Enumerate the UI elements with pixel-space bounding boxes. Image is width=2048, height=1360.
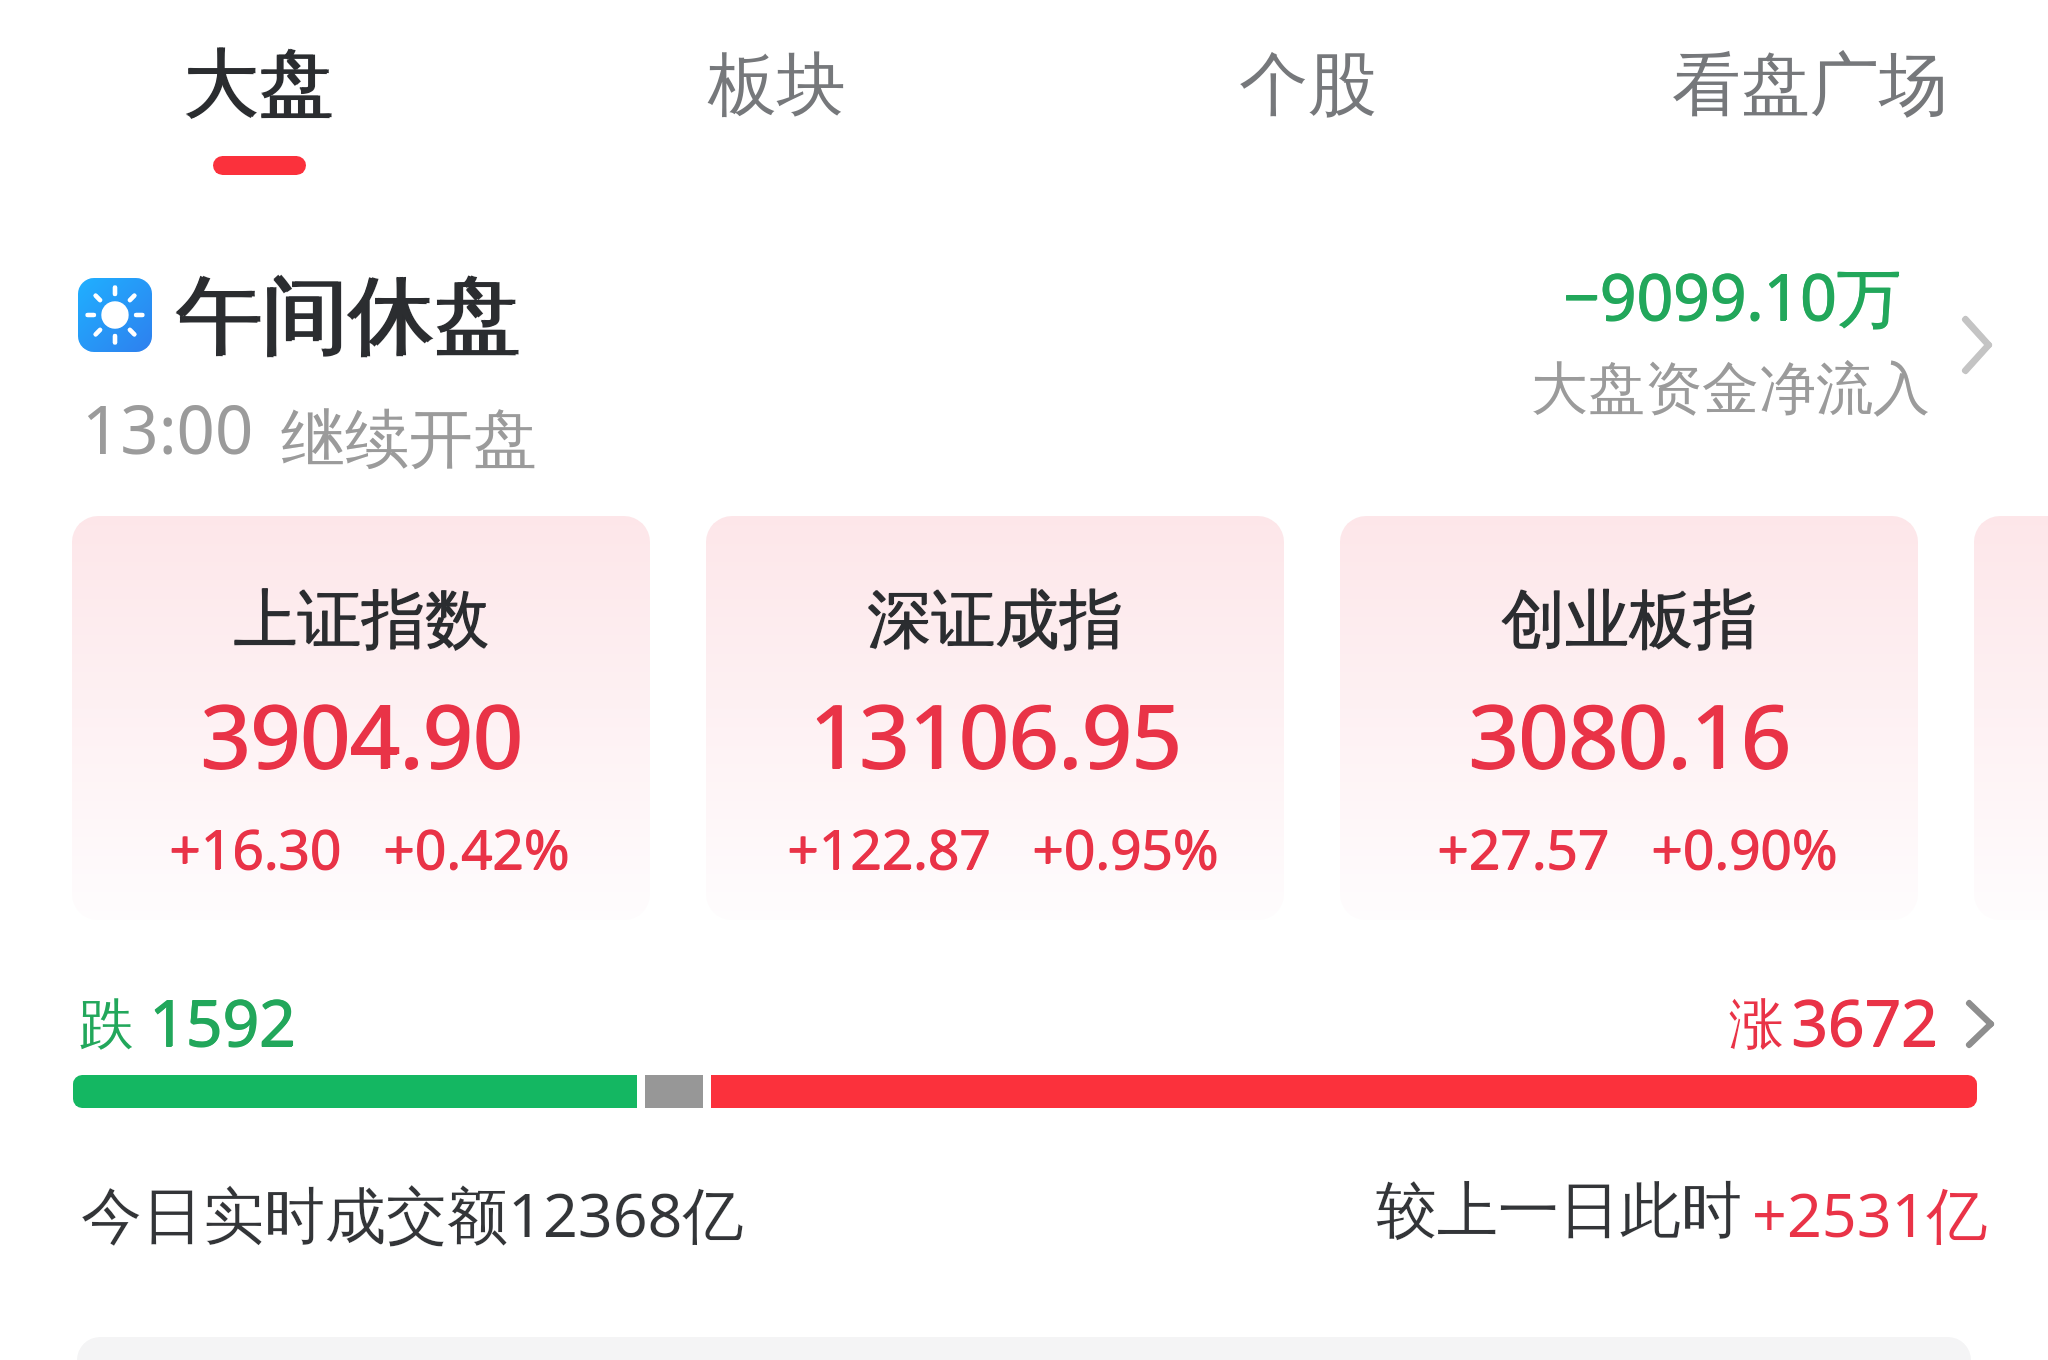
staticText: +122.87 <box>787 811 991 886</box>
staticText: 3080.16 <box>1468 676 1790 794</box>
staticText: 深证成指 <box>867 580 1123 661</box>
other: Fund flow details <box>1962 316 1992 374</box>
staticText: +16.30 <box>170 810 343 885</box>
button[interactable]: 上证指数 <box>72 516 650 920</box>
staticText: 13106.95 <box>811 675 1183 793</box>
staticText: 13:00 <box>82 382 254 473</box>
button[interactable]: 大盘 <box>183 5 333 163</box>
staticText: +0.42% <box>384 810 571 885</box>
staticText: 涨 <box>1729 990 1784 1059</box>
staticText: −9099.10万 <box>1564 252 1902 339</box>
staticText: 深证成指 <box>867 579 1123 660</box>
other: Midday market break <box>78 278 152 352</box>
button[interactable] <box>1974 516 2048 920</box>
other: Advancers and decliners <box>1966 1000 1994 1048</box>
staticText: 创业板指 <box>1501 579 1757 660</box>
button[interactable]: 创业板指 <box>1340 516 1918 920</box>
staticText: +0.95% <box>1032 811 1219 886</box>
staticText: +0.95% <box>1032 810 1219 885</box>
button[interactable]: 板块 <box>708 10 846 161</box>
staticText: +0.95% <box>1033 810 1220 885</box>
staticText: +0.90% <box>1651 810 1838 885</box>
staticText: +0.90% <box>1651 811 1838 886</box>
staticText: +0.42% <box>383 811 570 886</box>
staticText: +16.30 <box>169 811 342 886</box>
staticText: 继续开盘 <box>281 399 537 480</box>
staticText: +122.87 <box>787 810 991 885</box>
button[interactable]: Midday market break <box>60 250 2000 440</box>
staticText: 午间休盘 <box>178 262 522 370</box>
staticText: 大盘 <box>183 38 333 132</box>
staticText: 上证指数 <box>233 579 489 660</box>
staticText: 1592 <box>149 979 296 1066</box>
staticText: 大盘 <box>185 37 335 131</box>
staticText: 3672 <box>1792 978 1939 1065</box>
staticText: 创业板指 <box>1501 580 1757 661</box>
staticText: 1592 <box>150 978 297 1065</box>
staticText: +16.30 <box>169 810 342 885</box>
staticText: 3080.16 <box>1468 675 1790 793</box>
button[interactable]: 看盘广场 <box>1672 10 1948 161</box>
staticText: 深证成指 <box>868 579 1124 660</box>
staticText: +27.57 <box>1438 810 1611 885</box>
staticText: 3672 <box>1791 979 1938 1066</box>
staticText: +27.57 <box>1437 811 1610 886</box>
staticText: 上证指数 <box>233 580 489 661</box>
staticText: 午间休盘 <box>175 263 519 371</box>
staticText: 较上一日此时 <box>1376 1172 1742 1249</box>
staticText: 3904.90 <box>200 676 522 794</box>
staticText: 大盘资金净流入 <box>1531 353 1930 425</box>
staticText: −9099.10万 <box>1563 252 1901 339</box>
staticText: −9099.10万 <box>1563 253 1901 340</box>
staticText: 今日实时成交额12368亿 <box>81 1172 744 1255</box>
staticText: 大盘 <box>183 37 333 131</box>
staticText: 个股 <box>1239 42 1377 129</box>
staticText: +122.87 <box>788 810 992 885</box>
staticText: 上证指数 <box>234 579 490 660</box>
staticText: +2531亿 <box>1752 1172 1988 1255</box>
staticText: 看盘广场 <box>1672 42 1948 129</box>
staticText: +0.42% <box>383 810 570 885</box>
staticText: 3904.90 <box>200 675 522 793</box>
staticText: +27.57 <box>1437 810 1610 885</box>
staticText: 跌 <box>79 990 134 1059</box>
staticText: 板块 <box>708 42 846 129</box>
staticText: 13106.95 <box>809 675 1181 793</box>
button[interactable]: 跌 <box>60 960 2000 1130</box>
staticText: 1592 <box>149 978 296 1065</box>
staticText: 午间休盘 <box>175 262 519 370</box>
staticText: 3080.16 <box>1470 675 1792 793</box>
staticText: 13106.95 <box>809 676 1181 794</box>
staticText: 3904.90 <box>202 675 524 793</box>
button[interactable]: 深证成指 <box>706 516 1284 920</box>
staticText: +0.90% <box>1652 810 1839 885</box>
staticText: 3672 <box>1791 978 1938 1065</box>
staticText: 创业板指 <box>1502 579 1758 660</box>
button[interactable]: 个股 <box>1239 10 1377 161</box>
